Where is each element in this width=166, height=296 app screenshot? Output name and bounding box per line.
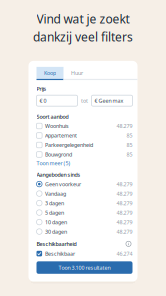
button[interactable]: Parkeergelegenheid (36, 140, 132, 150)
staticText: 30 dagen (45, 228, 67, 235)
button[interactable]: 10 dagen (36, 217, 132, 227)
staticText: 5 dagen (45, 209, 64, 216)
staticText: Appartement (45, 132, 77, 139)
staticText: tot (81, 97, 88, 104)
button[interactable]: Geen voorkeur (36, 179, 132, 189)
staticText: Beschikbaar (45, 250, 75, 257)
staticText: 48.279 (116, 228, 132, 235)
staticText: 48.279 (116, 122, 132, 129)
button[interactable]: Vandaag (36, 189, 132, 198)
staticText: Huur (71, 69, 83, 76)
staticText: Toon 3.100 resultaten (58, 264, 110, 271)
button[interactable]: Bouwgrond (36, 150, 132, 159)
staticText: Vind wat je zoekt (36, 11, 129, 27)
staticText: € 0 (39, 97, 46, 104)
staticText: dankzij veel filters (33, 29, 133, 45)
button[interactable]: 5 dagen (36, 208, 132, 217)
staticText: 3 dagen (45, 199, 64, 207)
staticText: Geen voorkeur (45, 180, 81, 188)
button[interactable]: Appartement (36, 131, 132, 140)
staticText: Vandaag (45, 190, 66, 197)
staticText: Beschikbaarheid (36, 240, 76, 247)
staticText: Toon meer (5) (36, 160, 70, 167)
button[interactable]: 3 dagen (36, 198, 132, 208)
button[interactable]: Koop (36, 67, 63, 79)
staticText: 48.279 (116, 218, 132, 226)
staticText: 46.274 (116, 250, 132, 257)
button[interactable]: 30 dagen (36, 227, 132, 236)
staticText: Soort aanbod (36, 113, 68, 120)
button[interactable]: Beschikbaar (36, 249, 132, 258)
staticText: 10 dagen (45, 218, 67, 226)
button[interactable]: Informatie over beschikbaarheid (124, 240, 132, 248)
button[interactable]: Toon meer (5) (36, 159, 70, 167)
staticText: € Geen max (94, 97, 123, 104)
staticText: 85 (126, 132, 132, 139)
staticText: 48.279 (116, 199, 132, 207)
staticText: Bouwgrond (45, 151, 72, 158)
staticText: Woonhuis (45, 122, 69, 129)
staticText: 48.279 (116, 209, 132, 216)
button[interactable]: Huur (63, 67, 90, 79)
staticText: Aangeboden sinds (36, 171, 80, 178)
staticText: Koop (44, 69, 56, 76)
staticText: Parkeergelegenheid (45, 141, 93, 148)
button[interactable]: Woonhuis (36, 121, 132, 131)
button[interactable]: Toon 3.100 resultaten (36, 261, 132, 274)
staticText: 48.279 (116, 180, 132, 188)
staticText: 48.279 (116, 190, 132, 197)
staticText: 85 (126, 141, 132, 148)
staticText: Prijs (36, 85, 46, 92)
staticText: 85 (126, 151, 132, 158)
